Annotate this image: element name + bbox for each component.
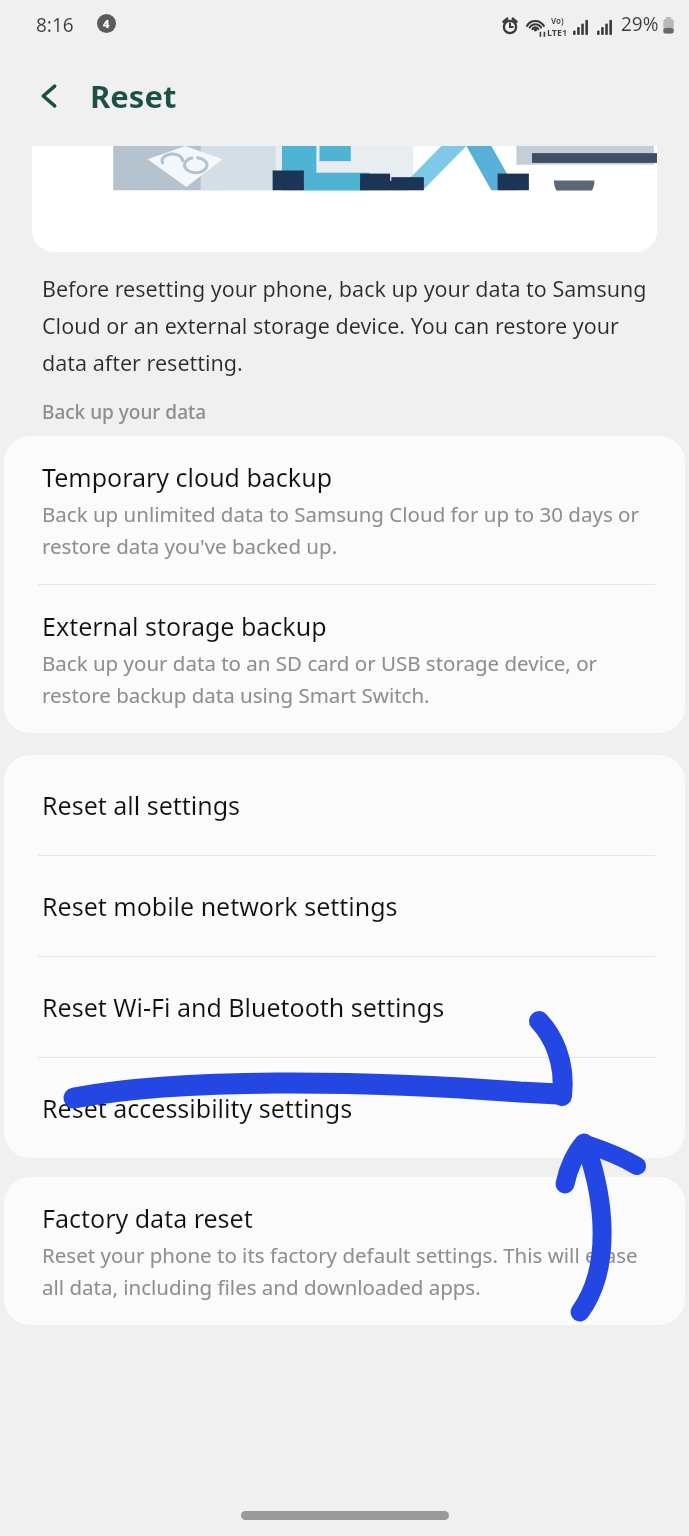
staticText: Vo) bbox=[551, 15, 564, 26]
staticText: LTE1 bbox=[547, 26, 568, 38]
staticText: Factory data reset bbox=[42, 1201, 253, 1235]
staticText: Reset bbox=[90, 75, 177, 117]
button[interactable]: Reset all settings bbox=[4, 755, 685, 855]
button[interactable]: Reset mobile network settings bbox=[4, 856, 685, 956]
staticText: 29% bbox=[621, 11, 659, 37]
staticText: Reset accessibility settings bbox=[42, 1091, 353, 1125]
staticText: Reset mobile network settings bbox=[42, 889, 398, 923]
button[interactable]: External storage backup bbox=[4, 585, 685, 733]
button[interactable]: Factory data reset bbox=[4, 1177, 685, 1325]
staticText: 4 bbox=[103, 16, 110, 31]
button[interactable]: Back bbox=[24, 70, 76, 122]
button[interactable]: Reset accessibility settings bbox=[4, 1058, 685, 1158]
staticText: 8:16 bbox=[36, 12, 74, 38]
staticText: Back up your data bbox=[42, 399, 207, 425]
staticText: Back up your data to an SD card or USB s… bbox=[42, 649, 657, 709]
staticText: Reset all settings bbox=[42, 788, 241, 822]
staticText: Before resetting your phone, back up you… bbox=[42, 274, 651, 377]
staticText: Reset your phone to its factory default … bbox=[42, 1241, 657, 1301]
button[interactable]: Temporary cloud backup bbox=[4, 436, 685, 584]
staticText: Back up unlimited data to Samsung Cloud … bbox=[42, 500, 657, 560]
staticText: External storage backup bbox=[42, 609, 327, 643]
button[interactable]: Reset Wi-Fi and Bluetooth settings bbox=[4, 957, 685, 1057]
staticText: Temporary cloud backup bbox=[42, 460, 333, 494]
staticText: Reset Wi-Fi and Bluetooth settings bbox=[42, 990, 445, 1024]
